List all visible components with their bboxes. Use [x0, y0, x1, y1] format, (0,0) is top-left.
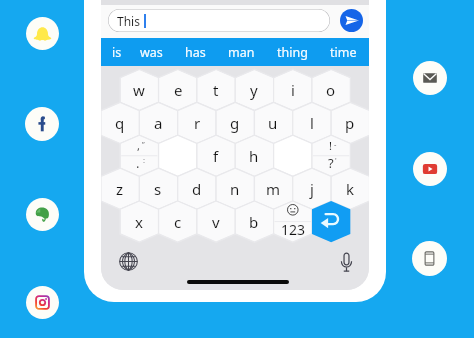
staticText: k: [346, 179, 355, 199]
button[interactable]: Snapchat: [26, 17, 59, 50]
button[interactable]: m: [254, 168, 292, 209]
button[interactable]: j: [293, 168, 331, 209]
button[interactable]: q: [101, 102, 139, 143]
staticText: g: [230, 113, 240, 133]
staticText: ': [335, 155, 337, 165]
button[interactable]: Email: [413, 61, 447, 95]
staticText: -: [334, 139, 337, 149]
button[interactable]: t: [197, 69, 235, 110]
button[interactable]: a: [139, 102, 177, 143]
staticText: e: [174, 80, 183, 100]
staticText: r: [194, 113, 201, 133]
staticText: d: [192, 179, 202, 199]
staticText: ?: [328, 154, 334, 172]
staticText: u: [268, 113, 278, 133]
button[interactable]: b: [235, 201, 273, 242]
staticText: l: [310, 113, 314, 133]
button[interactable]: i: [274, 69, 312, 110]
button[interactable]: d: [178, 168, 216, 209]
button[interactable]: Change language: [114, 247, 143, 276]
staticText: man: [228, 44, 255, 61]
button[interactable]: w: [120, 69, 158, 110]
button[interactable]: g: [216, 102, 254, 143]
button[interactable]: Voice input: [332, 248, 361, 277]
staticText: z: [116, 179, 124, 199]
staticText: !: [329, 138, 332, 153]
staticText: h: [249, 146, 259, 166]
button[interactable]: n: [216, 168, 254, 209]
staticText: x: [135, 212, 143, 232]
button[interactable]: This: [108, 9, 330, 32]
button[interactable]: k: [331, 168, 369, 209]
button[interactable]: Instagram: [26, 286, 59, 319]
staticText: This: [117, 13, 140, 29]
staticText: t: [213, 80, 219, 100]
button[interactable]: y: [235, 69, 273, 110]
staticText: n: [230, 179, 240, 199]
staticText: f: [213, 146, 219, 166]
button[interactable]: l: [293, 102, 331, 143]
staticText: time: [330, 44, 357, 61]
staticText: w: [133, 80, 145, 100]
button[interactable]: man: [219, 38, 263, 66]
staticText: :: [143, 155, 146, 165]
button[interactable]: ,: [120, 135, 158, 176]
button[interactable]: !: [312, 135, 350, 176]
staticText: c: [174, 212, 182, 232]
staticText: is: [112, 44, 122, 61]
button[interactable]: v: [197, 201, 235, 242]
staticText: b: [249, 212, 259, 232]
button[interactable]: s: [139, 168, 177, 209]
staticText: thing: [277, 44, 308, 61]
button[interactable]: YouTube: [413, 152, 447, 186]
button[interactable]: Facebook: [25, 107, 59, 141]
button[interactable]: c: [159, 201, 197, 242]
button[interactable]: 123: [274, 220, 312, 236]
button[interactable]: e: [159, 69, 197, 110]
button[interactable]: p: [331, 102, 369, 143]
button[interactable]: f: [197, 135, 235, 176]
button[interactable]: has: [173, 38, 217, 66]
button[interactable]: h: [235, 135, 273, 176]
button[interactable]: time: [321, 38, 365, 66]
button[interactable]: Device: [412, 241, 447, 276]
staticText: o: [326, 80, 336, 100]
button[interactable]: o: [312, 69, 350, 110]
staticText: q: [115, 113, 125, 133]
button[interactable]: Send: [340, 9, 363, 32]
button[interactable]: z: [101, 168, 139, 209]
staticText: was: [140, 44, 163, 61]
button[interactable]: u: [254, 102, 292, 143]
button[interactable]: Evernote: [26, 198, 59, 231]
staticText: 123: [281, 220, 306, 236]
staticText: ,: [137, 138, 140, 153]
staticText: v: [212, 212, 220, 232]
staticText: s: [154, 179, 162, 199]
button[interactable]: thing: [270, 38, 314, 66]
staticText: ”: [142, 139, 145, 149]
button[interactable]: x: [120, 201, 158, 242]
button[interactable]: Enter: [312, 201, 350, 242]
button[interactable]: r: [178, 102, 216, 143]
staticText: y: [250, 80, 258, 100]
staticText: p: [345, 113, 355, 133]
button[interactable]: was: [129, 38, 173, 66]
staticText: i: [291, 80, 295, 100]
staticText: a: [154, 113, 163, 133]
staticText: j: [310, 179, 314, 199]
staticText: m: [266, 179, 281, 199]
staticText: .: [136, 154, 140, 172]
staticText: has: [185, 44, 206, 61]
button[interactable]: is: [101, 38, 139, 66]
